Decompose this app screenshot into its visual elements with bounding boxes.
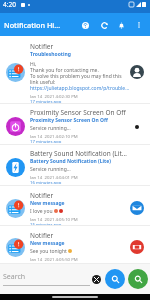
button[interactable]: Notifications xyxy=(113,17,129,33)
button[interactable]: Notifier xyxy=(0,36,150,104)
staticText: See you tonight xyxy=(30,248,67,254)
staticText: New message xyxy=(30,240,65,247)
staticText: 15 minutes ago xyxy=(30,221,62,226)
button[interactable]: More options xyxy=(131,17,147,33)
button[interactable]: Help xyxy=(77,17,93,33)
staticText: To solve this problem you may find this xyxy=(30,73,122,79)
staticText: https://julietapp.blogspot.com/p/trouble… xyxy=(30,85,130,91)
button[interactable]: Notifier xyxy=(0,226,150,264)
staticText: Service running… xyxy=(30,125,71,131)
staticText: Battery Sound Notification (Lite) xyxy=(30,158,111,165)
staticText: I love you xyxy=(30,208,53,214)
staticText: Hi, xyxy=(30,61,37,67)
staticText: Jan 14, 2021 4:02:30 PM xyxy=(30,93,78,98)
button[interactable]: Search xyxy=(128,269,148,289)
staticText: Proximity Sensor Screen On Off xyxy=(30,108,126,117)
staticText: New message xyxy=(30,200,65,207)
staticText: Troubleshooting xyxy=(30,51,71,58)
staticText: Notification Hi… xyxy=(4,20,61,30)
staticText: Proximity Sensor Screen On Off xyxy=(30,117,108,124)
staticText: Notifier xyxy=(30,231,54,240)
staticText: 16 minutes ago xyxy=(30,179,62,184)
button[interactable]: Proximity Sensor Screen On Off xyxy=(0,104,150,145)
staticText: Battery Sound Notification (Lit… xyxy=(30,149,127,158)
button[interactable]: Notifier xyxy=(0,186,150,226)
staticText: 14 minutes ago xyxy=(30,261,62,264)
staticText: 17 minutes ago xyxy=(30,138,62,143)
staticText: Notifier xyxy=(30,191,54,200)
staticText: 4:20 xyxy=(3,0,16,9)
button[interactable]: Search xyxy=(3,272,90,286)
staticText: Jan 14, 2021 4:05:50 PM xyxy=(30,256,78,261)
staticText: Jan 14, 2021 4:05:10 PM xyxy=(30,216,78,221)
button[interactable]: Battery Sound Notification (Lit… xyxy=(0,145,150,186)
staticText: Thank you for contacting me. xyxy=(30,67,99,73)
staticText: 17 minutes ago xyxy=(30,98,62,103)
staticText: link useful: xyxy=(30,79,56,85)
staticText: Jan 14, 2021 4:02:10 PM xyxy=(30,133,78,138)
staticText: Notifier xyxy=(30,42,54,51)
button[interactable]: Refresh xyxy=(96,17,112,33)
staticText: Jan 14, 2021 4:04:01 PM xyxy=(30,174,78,179)
staticText: Service running… xyxy=(30,166,71,172)
button[interactable]: Clear search xyxy=(92,275,101,284)
staticText: Search xyxy=(3,272,26,282)
button[interactable]: Search xyxy=(105,269,125,289)
